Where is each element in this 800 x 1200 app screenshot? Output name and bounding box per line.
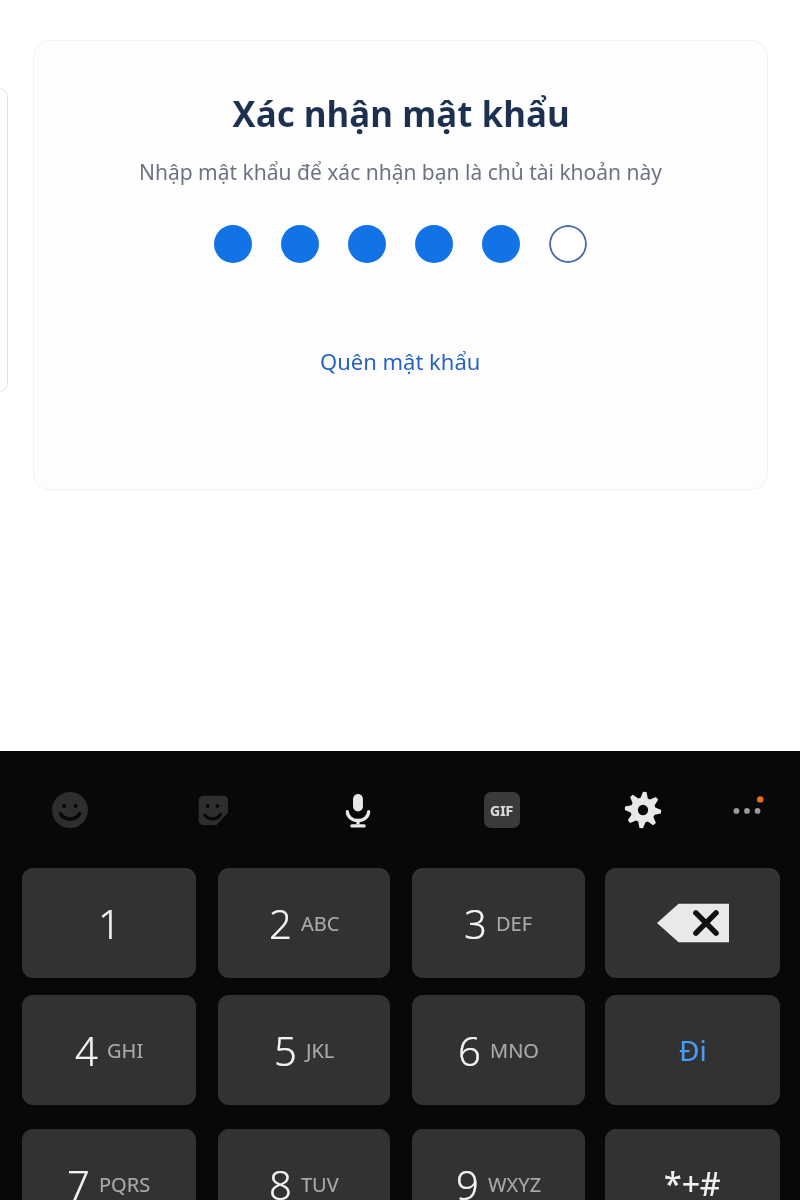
staticText: 5 xyxy=(274,1023,297,1077)
button[interactable]: Voice input xyxy=(328,780,388,840)
button[interactable]: 1 xyxy=(22,868,196,978)
button[interactable]: Settings xyxy=(613,780,673,840)
staticText: ABC xyxy=(301,910,340,937)
button[interactable]: GIF xyxy=(472,780,532,840)
button[interactable]: 7 xyxy=(22,1129,196,1200)
staticText: GIF xyxy=(490,801,514,820)
button[interactable]: 5 xyxy=(218,995,390,1105)
button[interactable]: More options xyxy=(717,780,777,840)
button[interactable]: 6 xyxy=(412,995,585,1105)
staticText: GHI xyxy=(107,1037,144,1064)
button[interactable]: 4 xyxy=(22,995,196,1105)
staticText: WXYZ xyxy=(488,1171,542,1198)
staticText: 1 xyxy=(98,896,121,950)
button[interactable]: *+# xyxy=(605,1129,780,1200)
button[interactable]: 2 xyxy=(218,868,390,978)
staticText: 8 xyxy=(269,1157,292,1200)
button[interactable]: Đi xyxy=(605,995,780,1105)
staticText: Đi xyxy=(679,1031,707,1069)
button[interactable]: Quên mật khẩu xyxy=(310,340,491,382)
staticText: 2 xyxy=(269,896,292,950)
staticText: TUV xyxy=(301,1171,339,1198)
staticText: DEF xyxy=(496,910,533,937)
staticText: Quên mật khẩu xyxy=(320,346,481,376)
staticText: 6 xyxy=(458,1023,481,1077)
button[interactable]: Backspace xyxy=(605,868,780,978)
button[interactable]: 9 xyxy=(412,1129,585,1200)
staticText: 4 xyxy=(75,1023,98,1077)
staticText: *+# xyxy=(664,1162,721,1200)
staticText: Nhập mật khẩu để xác nhận bạn là chủ tài… xyxy=(139,158,662,187)
staticText: 7 xyxy=(67,1157,90,1200)
button[interactable]: 3 xyxy=(412,868,585,978)
button[interactable]: Emoji xyxy=(40,780,100,840)
staticText: JKL xyxy=(306,1037,335,1064)
button[interactable]: 8 xyxy=(218,1129,390,1200)
button[interactable]: Sticker xyxy=(183,780,243,840)
staticText: PQRS xyxy=(99,1171,151,1198)
staticText: Xác nhận mật khẩu xyxy=(232,90,570,138)
staticText: 9 xyxy=(456,1157,479,1200)
staticText: 3 xyxy=(464,896,487,950)
staticText: MNO xyxy=(490,1037,539,1064)
